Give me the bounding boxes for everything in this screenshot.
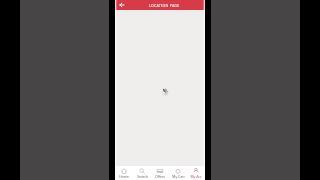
button[interactable]: Offers <box>151 166 169 180</box>
staticText: Offers <box>155 174 165 179</box>
button[interactable]: My Acc <box>187 166 205 180</box>
button[interactable]: Back <box>118 1 126 9</box>
button[interactable]: Search <box>133 166 151 180</box>
staticText: My Acc <box>190 174 202 179</box>
staticText: My Cart <box>172 174 185 179</box>
button[interactable]: My Cart <box>169 166 187 180</box>
button[interactable]: Home <box>115 166 133 180</box>
staticText: LOCATION PAGE <box>149 3 180 8</box>
staticText: Home <box>119 174 129 179</box>
staticText: Search <box>137 174 148 179</box>
